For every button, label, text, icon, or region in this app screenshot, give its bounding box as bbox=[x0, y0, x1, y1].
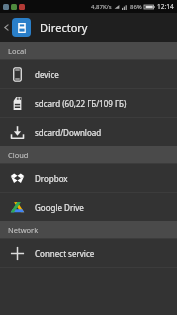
staticText: device bbox=[35, 69, 59, 80]
button[interactable]: Dropbox bbox=[0, 164, 177, 192]
staticText: Connect service bbox=[35, 248, 95, 259]
button[interactable]: Google Drive bbox=[0, 193, 177, 221]
button[interactable]: device bbox=[0, 60, 177, 88]
staticText: Directory bbox=[40, 20, 88, 35]
staticText: Dropbox bbox=[35, 173, 68, 184]
staticText: 4,87K/s bbox=[91, 3, 112, 11]
staticText: Local bbox=[8, 46, 27, 56]
staticText: Cloud bbox=[8, 150, 29, 160]
button[interactable]: sdcard (60,22 ГБ/109 ГБ) bbox=[0, 89, 177, 117]
staticText: sdcard (60,22 ГБ/109 ГБ) bbox=[35, 98, 127, 109]
staticText: 12:14 bbox=[157, 2, 174, 11]
button[interactable]: Back bbox=[0, 13, 12, 42]
button[interactable]: Connect service bbox=[0, 239, 177, 267]
staticText: Network bbox=[8, 225, 39, 235]
staticText: sdcard/Download bbox=[35, 127, 102, 138]
staticText: Google Drive bbox=[35, 202, 84, 213]
staticText: 86% bbox=[130, 3, 142, 11]
button[interactable]: Directory bbox=[12, 18, 31, 37]
button[interactable]: sdcard/Download bbox=[0, 118, 177, 146]
